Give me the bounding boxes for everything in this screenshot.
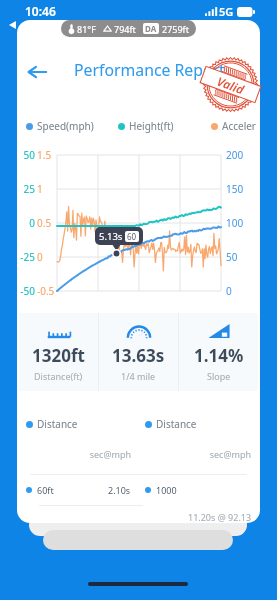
staticText: 1320ft — [32, 344, 85, 367]
button[interactable]: Height(ft) — [118, 119, 174, 133]
staticText: 150 — [226, 182, 252, 196]
staticText: -25 — [18, 250, 35, 264]
staticText: 60ft — [37, 484, 54, 496]
button[interactable]: 1.14% — [179, 313, 258, 391]
staticText: Height(ft) — [129, 119, 174, 133]
staticText: Acceler — [222, 119, 256, 133]
staticText: 1 — [37, 182, 55, 196]
staticText: 81°F — [77, 23, 96, 35]
button[interactable]: 1320ft — [19, 313, 98, 391]
staticText: Performance Report — [74, 59, 225, 81]
button[interactable]: Valid stamp — [202, 56, 259, 113]
staticText: 2759ft — [162, 23, 189, 35]
staticText: 1000 — [156, 484, 177, 496]
button[interactable]: 13.63s — [99, 313, 178, 391]
staticText: 1/4 mile — [121, 370, 156, 382]
staticText: 60 — [127, 231, 137, 242]
button[interactable]: 1000 — [145, 484, 251, 496]
staticText: 11.20s @ 92.13 — [188, 511, 252, 523]
staticText: 5G — [219, 4, 234, 19]
staticText: -0.5 — [37, 284, 55, 298]
button[interactable]: Back — [21, 59, 53, 85]
staticText: Distance — [37, 417, 78, 431]
button[interactable]: Distance — [26, 417, 78, 431]
staticText: 5.13s — [99, 230, 123, 243]
staticText: Valid — [215, 73, 247, 97]
staticText: DA — [145, 23, 157, 34]
staticText: 0.5 — [37, 216, 55, 230]
staticText: Slope — [207, 370, 231, 382]
staticText: 1.14% — [194, 344, 244, 367]
staticText: 794ft — [114, 23, 136, 35]
staticText: 10:46 — [25, 3, 56, 19]
staticText: 0 — [226, 284, 252, 298]
staticText: sec@mph — [145, 448, 251, 460]
staticText: Distance — [156, 417, 197, 431]
staticText: Speed(mph) — [37, 119, 94, 133]
staticText: 50 — [18, 148, 35, 162]
button[interactable]: 60ft — [26, 484, 131, 496]
staticText: 200 — [226, 148, 252, 162]
staticText: 13.63s — [112, 344, 165, 367]
staticText: 0 — [37, 250, 55, 264]
staticText: 50 — [226, 250, 252, 264]
staticText: 25 — [18, 182, 35, 196]
staticText: Distance(ft) — [34, 370, 83, 382]
button[interactable]: Speed(mph) — [26, 119, 94, 133]
button[interactable]: 5.13s — [95, 227, 143, 245]
staticText: 1.5 — [37, 148, 55, 162]
staticText: 100 — [226, 216, 252, 230]
staticText: -50 — [18, 284, 35, 298]
button[interactable]: Distance — [145, 417, 197, 431]
staticText: 2.10s — [108, 484, 131, 496]
button[interactable]: 81°F — [61, 20, 196, 37]
button[interactable]: Back — [5, 18, 19, 32]
staticText: 0 — [18, 216, 35, 230]
button[interactable]: Acceler — [211, 119, 256, 133]
staticText: sec@mph — [26, 448, 131, 460]
